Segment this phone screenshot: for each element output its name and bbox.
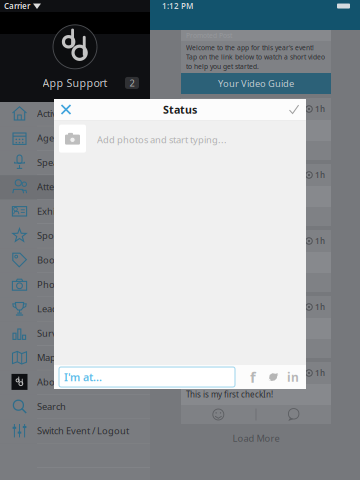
button[interactable]: Activity: [0, 102, 150, 126]
staticText: Agenda: [37, 132, 71, 144]
button[interactable]: Surveys: [0, 322, 150, 346]
button[interactable]: Agenda: [0, 126, 150, 151]
staticText: Bookmarks: [37, 254, 87, 266]
button[interactable]: Post status: [282, 98, 306, 120]
staticText: 1h: [315, 302, 325, 312]
button[interactable]: Photos: [0, 273, 150, 297]
button[interactable]: I'm at...: [59, 367, 235, 387]
button[interactable]: About: [0, 370, 150, 395]
button[interactable]: Attendees: [0, 175, 150, 200]
staticText: Load More: [232, 432, 279, 444]
staticText: Activity: [37, 107, 67, 120]
button[interactable]: Exhibitors: [0, 200, 150, 224]
staticText: Carrier: [4, 1, 30, 11]
staticText: Map: [37, 351, 56, 364]
staticText: 1h: [315, 170, 325, 180]
staticText: Search: [37, 400, 66, 412]
staticText: 2: [129, 77, 134, 89]
staticText: 1:12 PM: [162, 1, 193, 11]
button[interactable]: Share to LinkedIn: [283, 366, 303, 388]
button[interactable]: Bookmarks: [0, 248, 150, 273]
button[interactable]: Leaderboard: [0, 297, 150, 322]
button[interactable]: Close: [54, 98, 78, 120]
staticText: This is my first checkIn!: [186, 389, 273, 400]
button[interactable]: Map: [0, 346, 150, 370]
staticText: Sponsors: [37, 229, 78, 242]
staticText: in: [287, 369, 299, 385]
button[interactable]: Share to Facebook: [243, 366, 263, 388]
staticText: 1h: [315, 104, 325, 114]
staticText: Leaderboard: [37, 302, 94, 315]
staticText: Photos: [37, 278, 68, 290]
staticText: Your Video Guide: [218, 77, 294, 90]
staticText: Attendees: [37, 180, 80, 193]
button[interactable]: Add photos: [59, 125, 86, 153]
button[interactable]: Share to Twitter: [263, 366, 283, 388]
button[interactable]: Sponsors: [0, 224, 150, 248]
staticText: Surveys: [37, 327, 71, 339]
button[interactable]: Speakers: [0, 151, 150, 175]
staticText: App Support: [42, 76, 107, 90]
button[interactable]: Search: [0, 395, 150, 419]
staticText: About: [37, 376, 64, 388]
staticText: Welcome to the app for this year's event…: [186, 43, 314, 52]
button[interactable]: Switch Event / Logout: [0, 419, 150, 444]
staticText: to help you get started.: [186, 62, 259, 71]
staticText: Status: [163, 102, 197, 117]
staticText: Switch Event / Logout: [37, 424, 129, 437]
staticText: Promoted Post: [186, 31, 232, 40]
staticText: I'm at...: [64, 370, 102, 384]
staticText: Add photos and start typing...: [97, 133, 227, 146]
staticText: Exhibitors: [37, 205, 80, 217]
staticText: Tap on the link below to watch a short v…: [186, 53, 325, 61]
staticText: Speakers: [37, 156, 76, 168]
staticText: App Support: [206, 367, 263, 379]
staticText: 1h: [315, 236, 325, 246]
staticText: f: [250, 367, 256, 387]
staticText: 1h: [315, 368, 325, 378]
button[interactable]: Your Video Guide: [181, 73, 331, 94]
